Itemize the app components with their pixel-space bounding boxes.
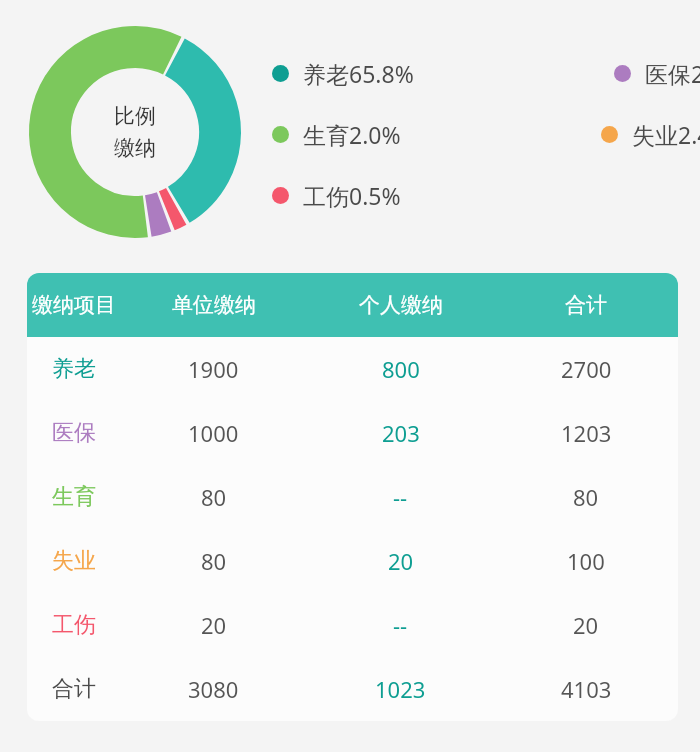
staticText: 工伤0.5% (303, 180, 401, 211)
staticText: 合计 (565, 292, 607, 318)
staticText: 医保29.3% (645, 58, 700, 89)
staticText: 2700 (561, 354, 612, 384)
button[interactable]: 工伤 (27, 593, 678, 657)
button[interactable]: 养老 (27, 337, 678, 401)
staticText: 失业2.4% (632, 119, 700, 150)
staticText: 单位缴纳 (172, 292, 256, 318)
staticText: 20 (201, 610, 227, 640)
button[interactable]: 失业 (27, 529, 678, 593)
staticText: 80 (201, 482, 227, 512)
staticText: 个人缴纳 (359, 292, 443, 318)
button[interactable]: 医保 (27, 401, 678, 465)
staticText: 失业 (52, 547, 96, 575)
staticText: -- (393, 610, 408, 640)
staticText: 1023 (375, 674, 426, 704)
staticText: 养老65.8% (303, 58, 414, 89)
staticText: 1900 (188, 354, 239, 384)
staticText: 4103 (561, 674, 612, 704)
staticText: 比例 (114, 103, 156, 129)
button[interactable]: 缴纳项目 (27, 273, 678, 337)
staticText: 缴纳项目 (32, 292, 116, 318)
staticText: 100 (567, 546, 605, 576)
staticText: 工伤 (52, 611, 96, 639)
staticText: 医保 (52, 419, 96, 447)
staticText: 养老 (52, 355, 96, 383)
staticText: 20 (388, 546, 414, 576)
staticText: 3080 (188, 674, 239, 704)
staticText: 203 (382, 418, 420, 448)
staticText: 生育 (52, 483, 96, 511)
button[interactable]: 生育 (27, 465, 678, 529)
staticText: 1000 (188, 418, 239, 448)
staticText: -- (393, 482, 408, 512)
staticText: 合计 (52, 675, 96, 703)
staticText: 800 (382, 354, 420, 384)
staticText: 1203 (561, 418, 612, 448)
staticText: 缴纳 (114, 135, 156, 161)
staticText: 80 (573, 482, 599, 512)
staticText: 生育2.0% (303, 119, 401, 150)
button[interactable]: 合计 (27, 657, 678, 721)
button[interactable]: 医保29.3% (614, 58, 700, 89)
button[interactable]: 生育2.0% (272, 119, 401, 150)
button[interactable]: 工伤0.5% (272, 180, 401, 211)
staticText: 20 (573, 610, 599, 640)
button[interactable]: 养老65.8% (272, 58, 414, 89)
button[interactable]: 失业2.4% (601, 119, 700, 150)
staticText: 80 (201, 546, 227, 576)
